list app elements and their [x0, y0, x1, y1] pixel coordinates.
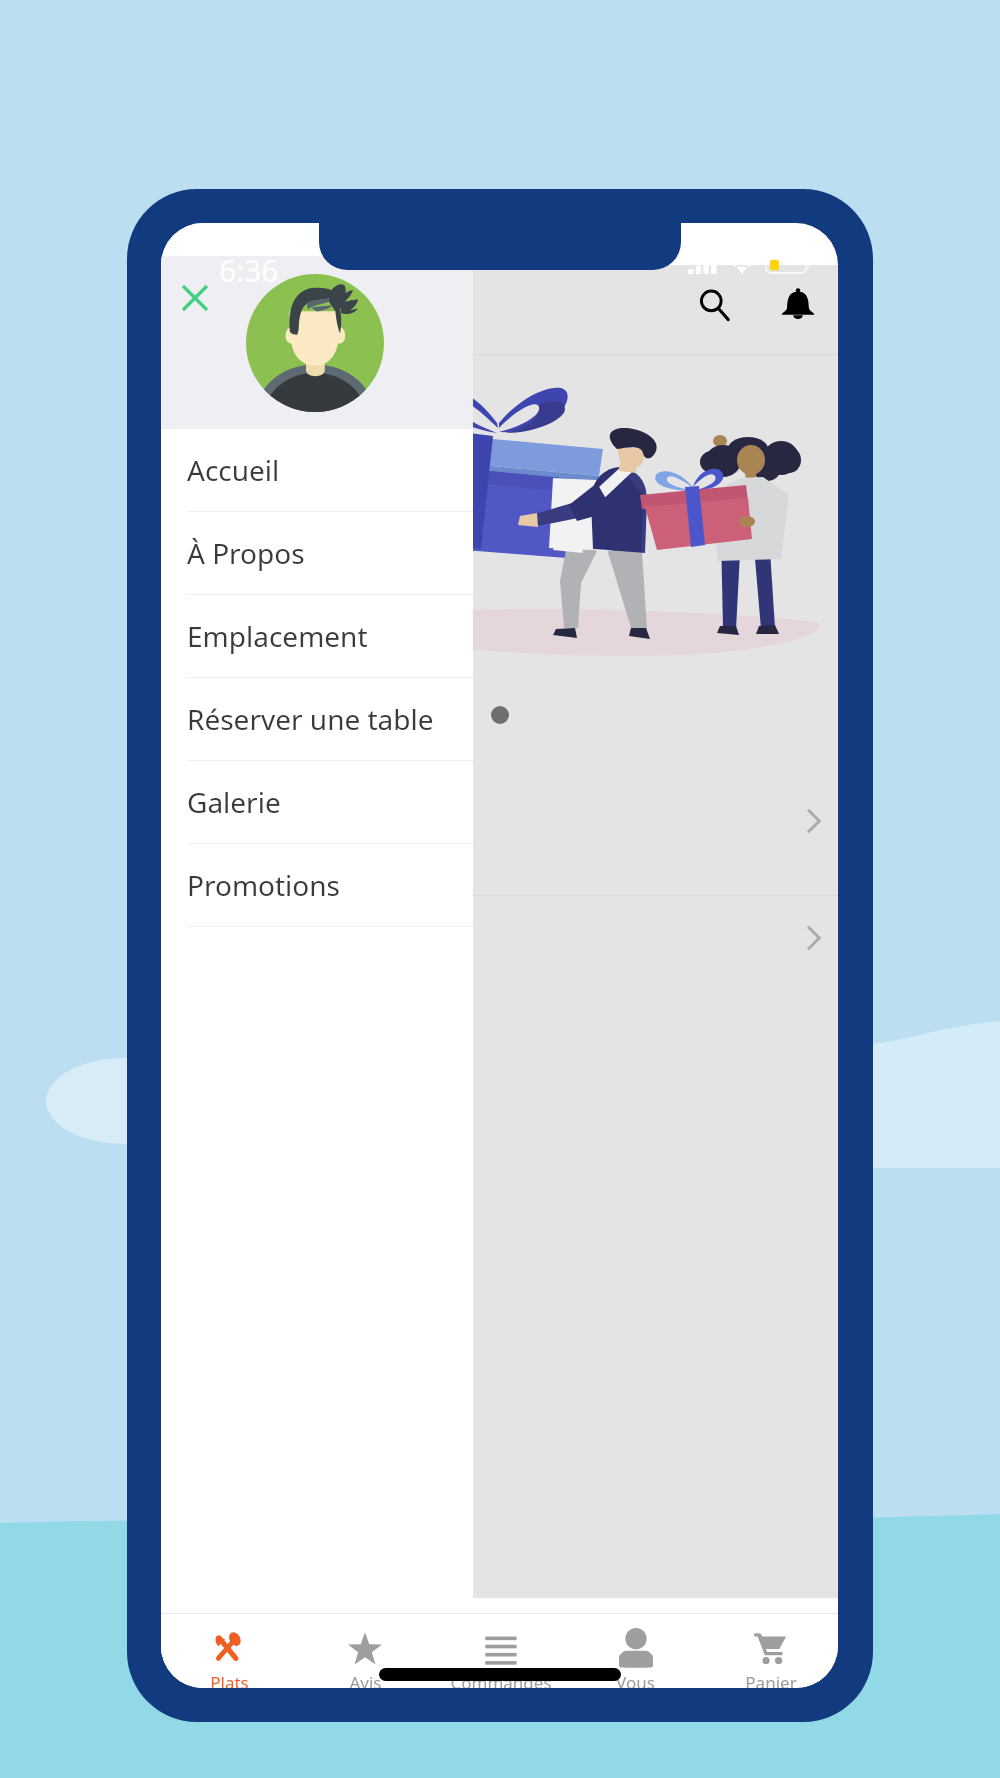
button[interactable]: Search — [684, 275, 744, 335]
button[interactable] — [161, 754, 838, 887]
button[interactable]: Réserver une table — [161, 678, 473, 760]
staticText: Promotions — [187, 866, 340, 904]
button[interactable] — [161, 896, 838, 980]
staticText: Vous — [616, 1671, 655, 1688]
button[interactable]: Plats — [161, 1614, 297, 1688]
button[interactable]: À Propos — [161, 512, 473, 594]
staticText: Commandes — [450, 1671, 552, 1688]
button[interactable]: Commandes — [433, 1614, 568, 1688]
button[interactable]: Vous — [568, 1614, 703, 1688]
button[interactable]: Close menu — [173, 276, 217, 320]
staticText: Plats — [210, 1671, 249, 1688]
staticText: À Propos — [187, 534, 305, 572]
staticText: Panier — [745, 1671, 797, 1688]
staticText: Emplacement — [187, 617, 368, 655]
button[interactable]: Emplacement — [161, 595, 473, 677]
button[interactable]: Accueil — [161, 429, 473, 511]
button[interactable]: Promotions — [161, 844, 473, 926]
button[interactable]: Avis — [297, 1614, 433, 1688]
button[interactable]: Galerie — [161, 761, 473, 843]
button[interactable]: Panier — [703, 1614, 838, 1688]
staticText: Avis — [349, 1671, 382, 1688]
button[interactable]: Notifications — [768, 275, 828, 335]
staticText: 6:36 — [219, 250, 279, 291]
staticText: Réserver une table — [187, 700, 434, 738]
staticText: Accueil — [187, 451, 280, 489]
staticText: Galerie — [187, 783, 281, 821]
